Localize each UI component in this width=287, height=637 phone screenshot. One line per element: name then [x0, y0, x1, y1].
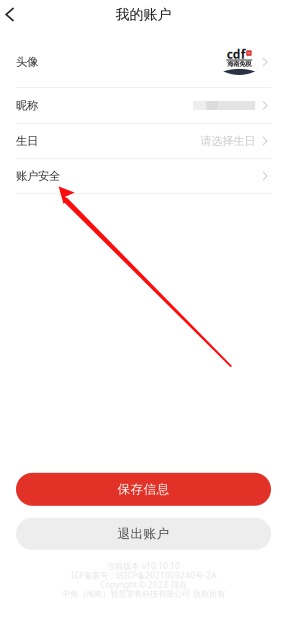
- staticText: 保存信息: [117, 481, 169, 497]
- staticText: Copyright © 2023-现在: [100, 579, 187, 590]
- staticText: 我的账户: [115, 6, 171, 23]
- staticText: ICP备案号：琼ICP备2021009240号-2A: [71, 569, 216, 581]
- staticText: 退出账户: [117, 526, 169, 542]
- button[interactable]: 生日: [0, 124, 287, 159]
- button[interactable]: 账户安全: [0, 159, 287, 194]
- button[interactable]: Back: [0, 0, 25, 37]
- button[interactable]: 退出账户: [16, 518, 271, 550]
- staticText: 中免（海南）智慧零售科技有限公司 版权所有: [62, 589, 225, 599]
- staticText: 账户安全: [16, 169, 60, 183]
- button[interactable]: 昵称: [0, 88, 287, 124]
- button[interactable]: 保存信息: [16, 473, 271, 506]
- staticText: 请选择生日: [200, 134, 255, 148]
- staticText: cdf: [227, 46, 246, 62]
- staticText: 昵称: [16, 98, 38, 113]
- staticText: 当前版本 v10.10.10: [107, 560, 180, 571]
- staticText: 海南免税: [227, 60, 251, 68]
- button[interactable]: 头像: [0, 37, 287, 88]
- staticText: 生日: [16, 134, 38, 148]
- staticText: 头像: [16, 55, 38, 69]
